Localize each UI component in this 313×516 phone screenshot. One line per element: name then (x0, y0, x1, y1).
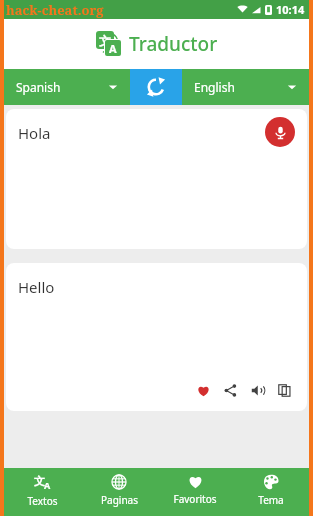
button[interactable]: Tema (233, 468, 309, 516)
staticText: Tema (258, 493, 284, 507)
staticText: Hola (18, 123, 51, 143)
button[interactable]: Paginas (81, 468, 157, 516)
staticText: Favoritos (173, 492, 217, 506)
button[interactable]: Share (219, 379, 241, 401)
button[interactable]: Spanish (4, 69, 130, 105)
button[interactable]: English (182, 69, 309, 105)
button[interactable]: Favorite (192, 379, 214, 401)
button[interactable]: 文 (4, 468, 81, 516)
staticText: A (109, 41, 117, 56)
button[interactable]: Copy (273, 379, 295, 401)
staticText: 文 (34, 474, 45, 488)
staticText: 文 (99, 33, 111, 48)
staticText: English (194, 79, 235, 95)
staticText: A (44, 479, 51, 491)
staticText: Traductor (129, 31, 218, 57)
button[interactable]: Listen (246, 379, 268, 401)
button[interactable]: Swap languages (130, 69, 182, 105)
staticText: Textos (27, 494, 58, 508)
staticText: hack-cheat.org (6, 1, 104, 19)
button[interactable]: Hola (6, 109, 307, 249)
staticText: Paginas (101, 493, 138, 507)
staticText: Hello (18, 277, 55, 297)
button[interactable]: Voice input (265, 117, 295, 147)
staticText: Spanish (16, 79, 61, 95)
button[interactable]: Hello (6, 263, 307, 411)
button[interactable]: Favoritos (157, 468, 233, 516)
staticText: 10:14 (276, 2, 305, 17)
